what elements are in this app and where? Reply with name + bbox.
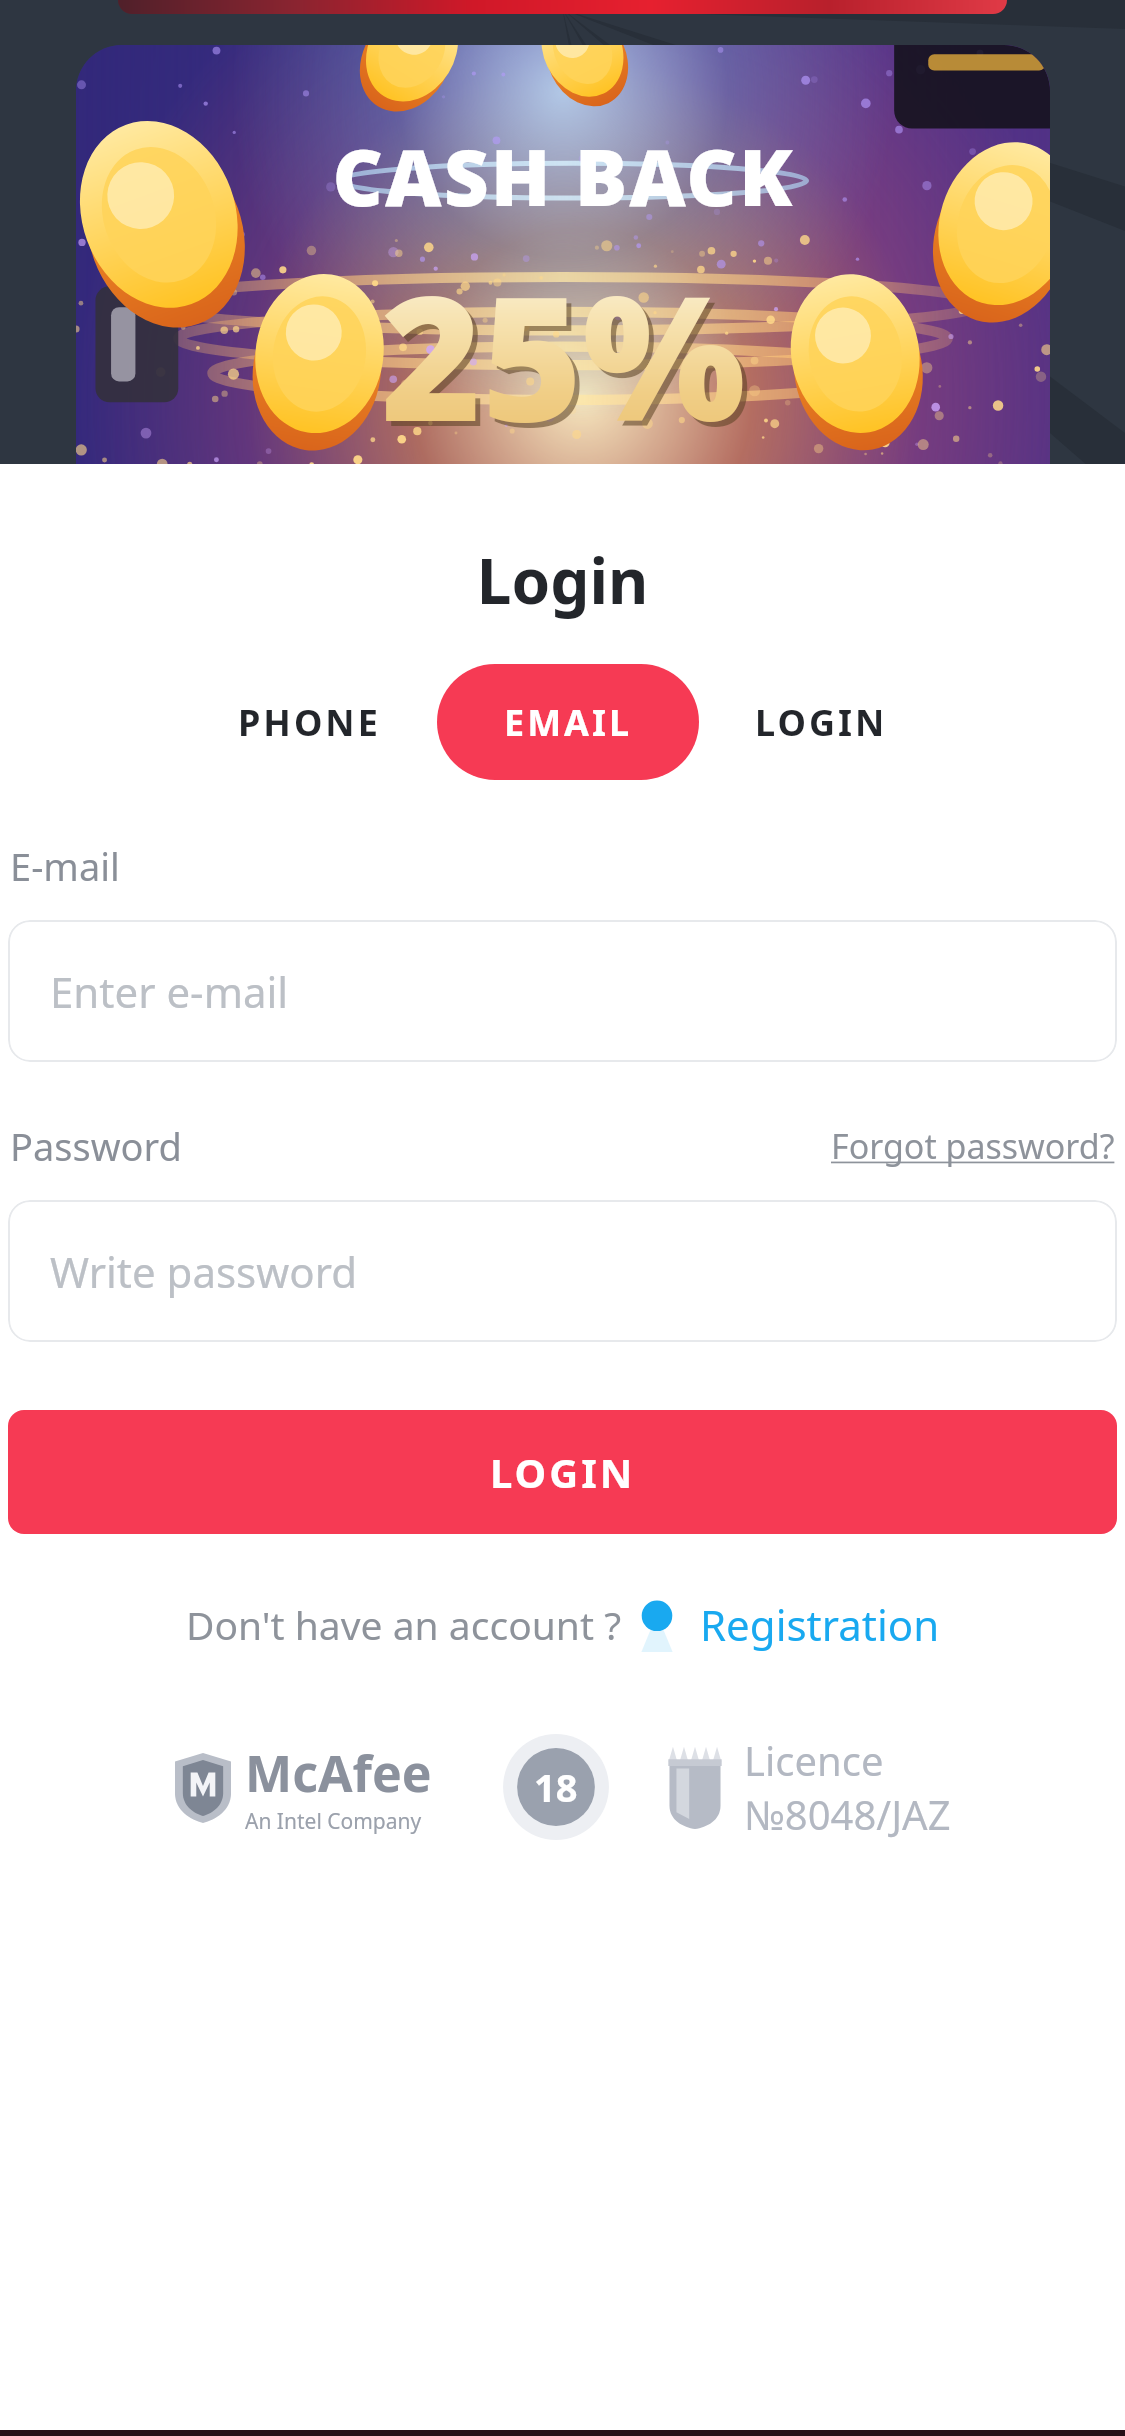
button[interactable]: Password input <box>8 1200 1117 1342</box>
staticText: Login <box>0 538 1125 622</box>
button[interactable]: E-mail input <box>8 920 1117 1062</box>
staticText: PHONE <box>238 698 381 747</box>
button[interactable]: Registration <box>700 1596 940 1653</box>
staticText: Licence <box>744 1733 884 1787</box>
staticText: An Intel Company <box>245 1807 422 1836</box>
staticText: Forgot password? <box>831 1123 1115 1169</box>
button[interactable]: PHONE <box>218 672 401 773</box>
staticText: 18 <box>534 1761 578 1813</box>
staticText: LOGIN <box>755 698 888 747</box>
button[interactable]: EMAIL <box>437 664 699 780</box>
staticText: LOGIN <box>490 1445 636 1499</box>
staticText: №8048/JAZ <box>744 1787 951 1841</box>
button[interactable]: Forgot password? <box>831 1123 1115 1169</box>
staticText: Registration <box>700 1596 940 1653</box>
staticText: 25% <box>381 237 746 471</box>
staticText: Enter e-mail <box>50 963 289 1020</box>
button[interactable]: LOGIN <box>735 672 908 773</box>
staticText: E-mail <box>10 840 120 892</box>
staticText: Don't have an account ? <box>186 1598 622 1651</box>
staticText: EMAIL <box>504 698 633 747</box>
staticText: Password <box>10 1120 182 1172</box>
button[interactable]: LOGIN <box>8 1410 1117 1534</box>
staticText: McAfee <box>245 1739 432 1807</box>
staticText: 25% <box>386 242 751 476</box>
staticText: Write password <box>50 1243 357 1300</box>
staticText: CASH BACK <box>332 123 795 229</box>
